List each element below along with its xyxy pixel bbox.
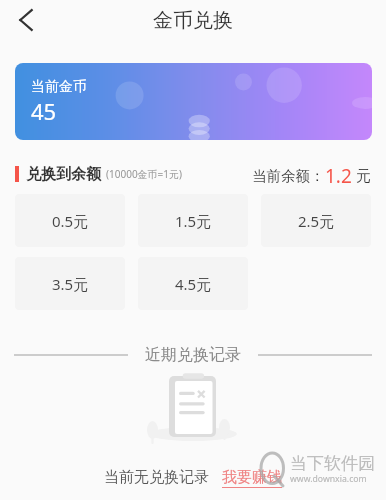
staticText: 金币兑换 — [153, 8, 233, 33]
staticText: (10000金币=1元) — [106, 167, 183, 181]
staticText: 3.5元 — [52, 274, 89, 294]
staticText: 近期兑换记录 — [145, 345, 241, 364]
button[interactable]: 3.5元 — [15, 257, 125, 310]
staticText: www.downxia.com — [290, 473, 367, 485]
button[interactable]: 2.5元 — [261, 194, 371, 247]
button[interactable]: 当前金币 — [15, 63, 372, 140]
staticText: 当前金币 — [31, 78, 87, 96]
staticText: 1.2 — [325, 163, 352, 185]
staticText: 2.5元 — [298, 211, 335, 231]
staticText: 45 — [31, 96, 57, 126]
staticText: 1.5元 — [175, 211, 212, 231]
staticText: 当前余额： — [252, 167, 325, 185]
staticText: 当前无兑换记录 — [104, 468, 209, 487]
button[interactable]: 我要赚钱 — [222, 468, 282, 488]
button[interactable]: 1.5元 — [138, 194, 248, 247]
button[interactable]: 4.5元 — [138, 257, 248, 310]
staticText: 元 — [352, 165, 371, 185]
button[interactable]: Back — [5, 0, 47, 41]
staticText: 兑换到余额 — [26, 165, 101, 184]
staticText: 4.5元 — [175, 274, 212, 294]
staticText: 0.5元 — [52, 211, 89, 231]
staticText: 当下软件园 — [290, 453, 375, 474]
staticText: 我要赚钱 — [222, 468, 282, 487]
button[interactable]: 0.5元 — [15, 194, 125, 247]
